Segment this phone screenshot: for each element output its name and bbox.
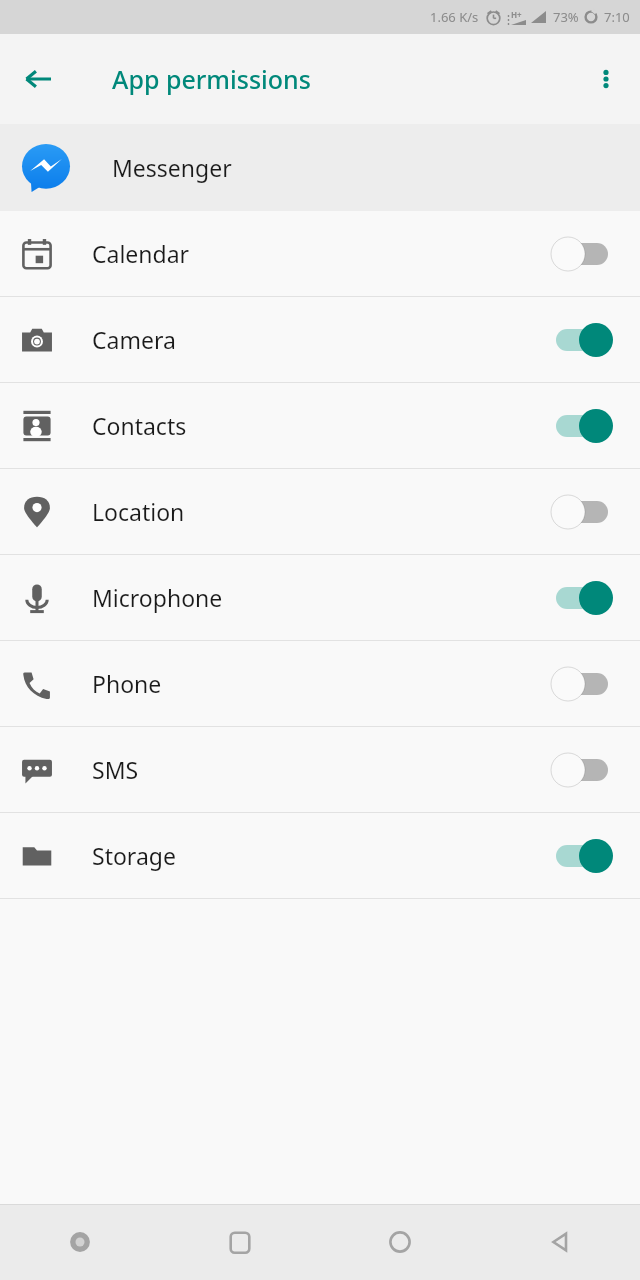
button[interactable]: Microphone — [0, 555, 640, 640]
button[interactable] — [550, 833, 614, 879]
button[interactable] — [550, 661, 614, 707]
staticText: H+ — [511, 9, 522, 20]
button[interactable] — [550, 403, 614, 449]
staticText: Contacts — [92, 410, 550, 441]
staticText: 73% — [553, 8, 579, 26]
button[interactable] — [550, 317, 614, 363]
staticText: Microphone — [92, 582, 550, 613]
button[interactable]: Storage — [0, 813, 640, 898]
staticText: Storage — [92, 840, 550, 871]
button[interactable]: Home — [320, 1204, 480, 1280]
button[interactable] — [550, 489, 614, 535]
staticText: Calendar — [92, 238, 550, 269]
staticText: Messenger — [112, 152, 232, 183]
button[interactable]: Back — [480, 1204, 640, 1280]
button[interactable]: Recents — [160, 1204, 320, 1280]
staticText: Location — [92, 496, 550, 527]
staticText: Camera — [92, 324, 550, 355]
button[interactable]: More options — [580, 53, 632, 105]
staticText: App permissions — [112, 62, 311, 96]
button[interactable]: Back — [10, 51, 66, 107]
button[interactable]: Phone — [0, 641, 640, 726]
button[interactable] — [550, 747, 614, 793]
button[interactable]: Location — [0, 469, 640, 554]
staticText: Phone — [92, 668, 550, 699]
button[interactable]: Contacts — [0, 383, 640, 468]
staticText: SMS — [92, 754, 550, 785]
button[interactable]: Camera — [0, 297, 640, 382]
staticText: 1.66 K/s — [430, 8, 479, 26]
button[interactable]: Assistant — [0, 1204, 160, 1280]
staticText: 7:10 — [604, 8, 630, 26]
button[interactable]: SMS — [0, 727, 640, 812]
button[interactable] — [550, 231, 614, 277]
button[interactable] — [550, 575, 614, 621]
button[interactable]: Messenger — [0, 124, 640, 211]
button[interactable]: Calendar — [0, 211, 640, 296]
